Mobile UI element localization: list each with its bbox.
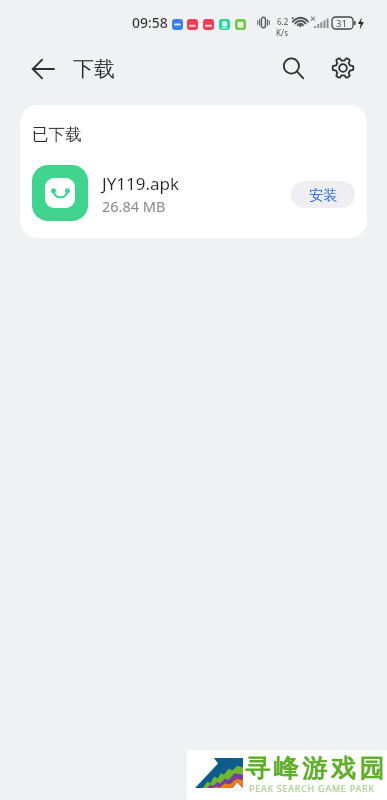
staticText: 下载 (73, 56, 115, 82)
staticText: 6.2 (277, 16, 289, 27)
button[interactable]: Search (272, 47, 314, 89)
staticText: JY119.apk (102, 172, 180, 195)
staticText: 已下载 (32, 124, 82, 145)
staticText: 31 (336, 17, 347, 29)
button[interactable]: 安装 (291, 181, 355, 208)
button[interactable]: JY119.apk (20, 153, 367, 233)
button[interactable]: Back (22, 48, 64, 90)
staticText: 寻峰游戏园 (243, 753, 386, 784)
staticText: K/s (276, 27, 289, 38)
button[interactable]: Settings (322, 47, 364, 89)
staticText: 26.84 MB (102, 196, 166, 216)
staticText: 安装 (309, 186, 338, 204)
staticText: PEAK SEARCH GAME PARK (249, 782, 375, 794)
staticText: 09:58 (132, 13, 168, 32)
